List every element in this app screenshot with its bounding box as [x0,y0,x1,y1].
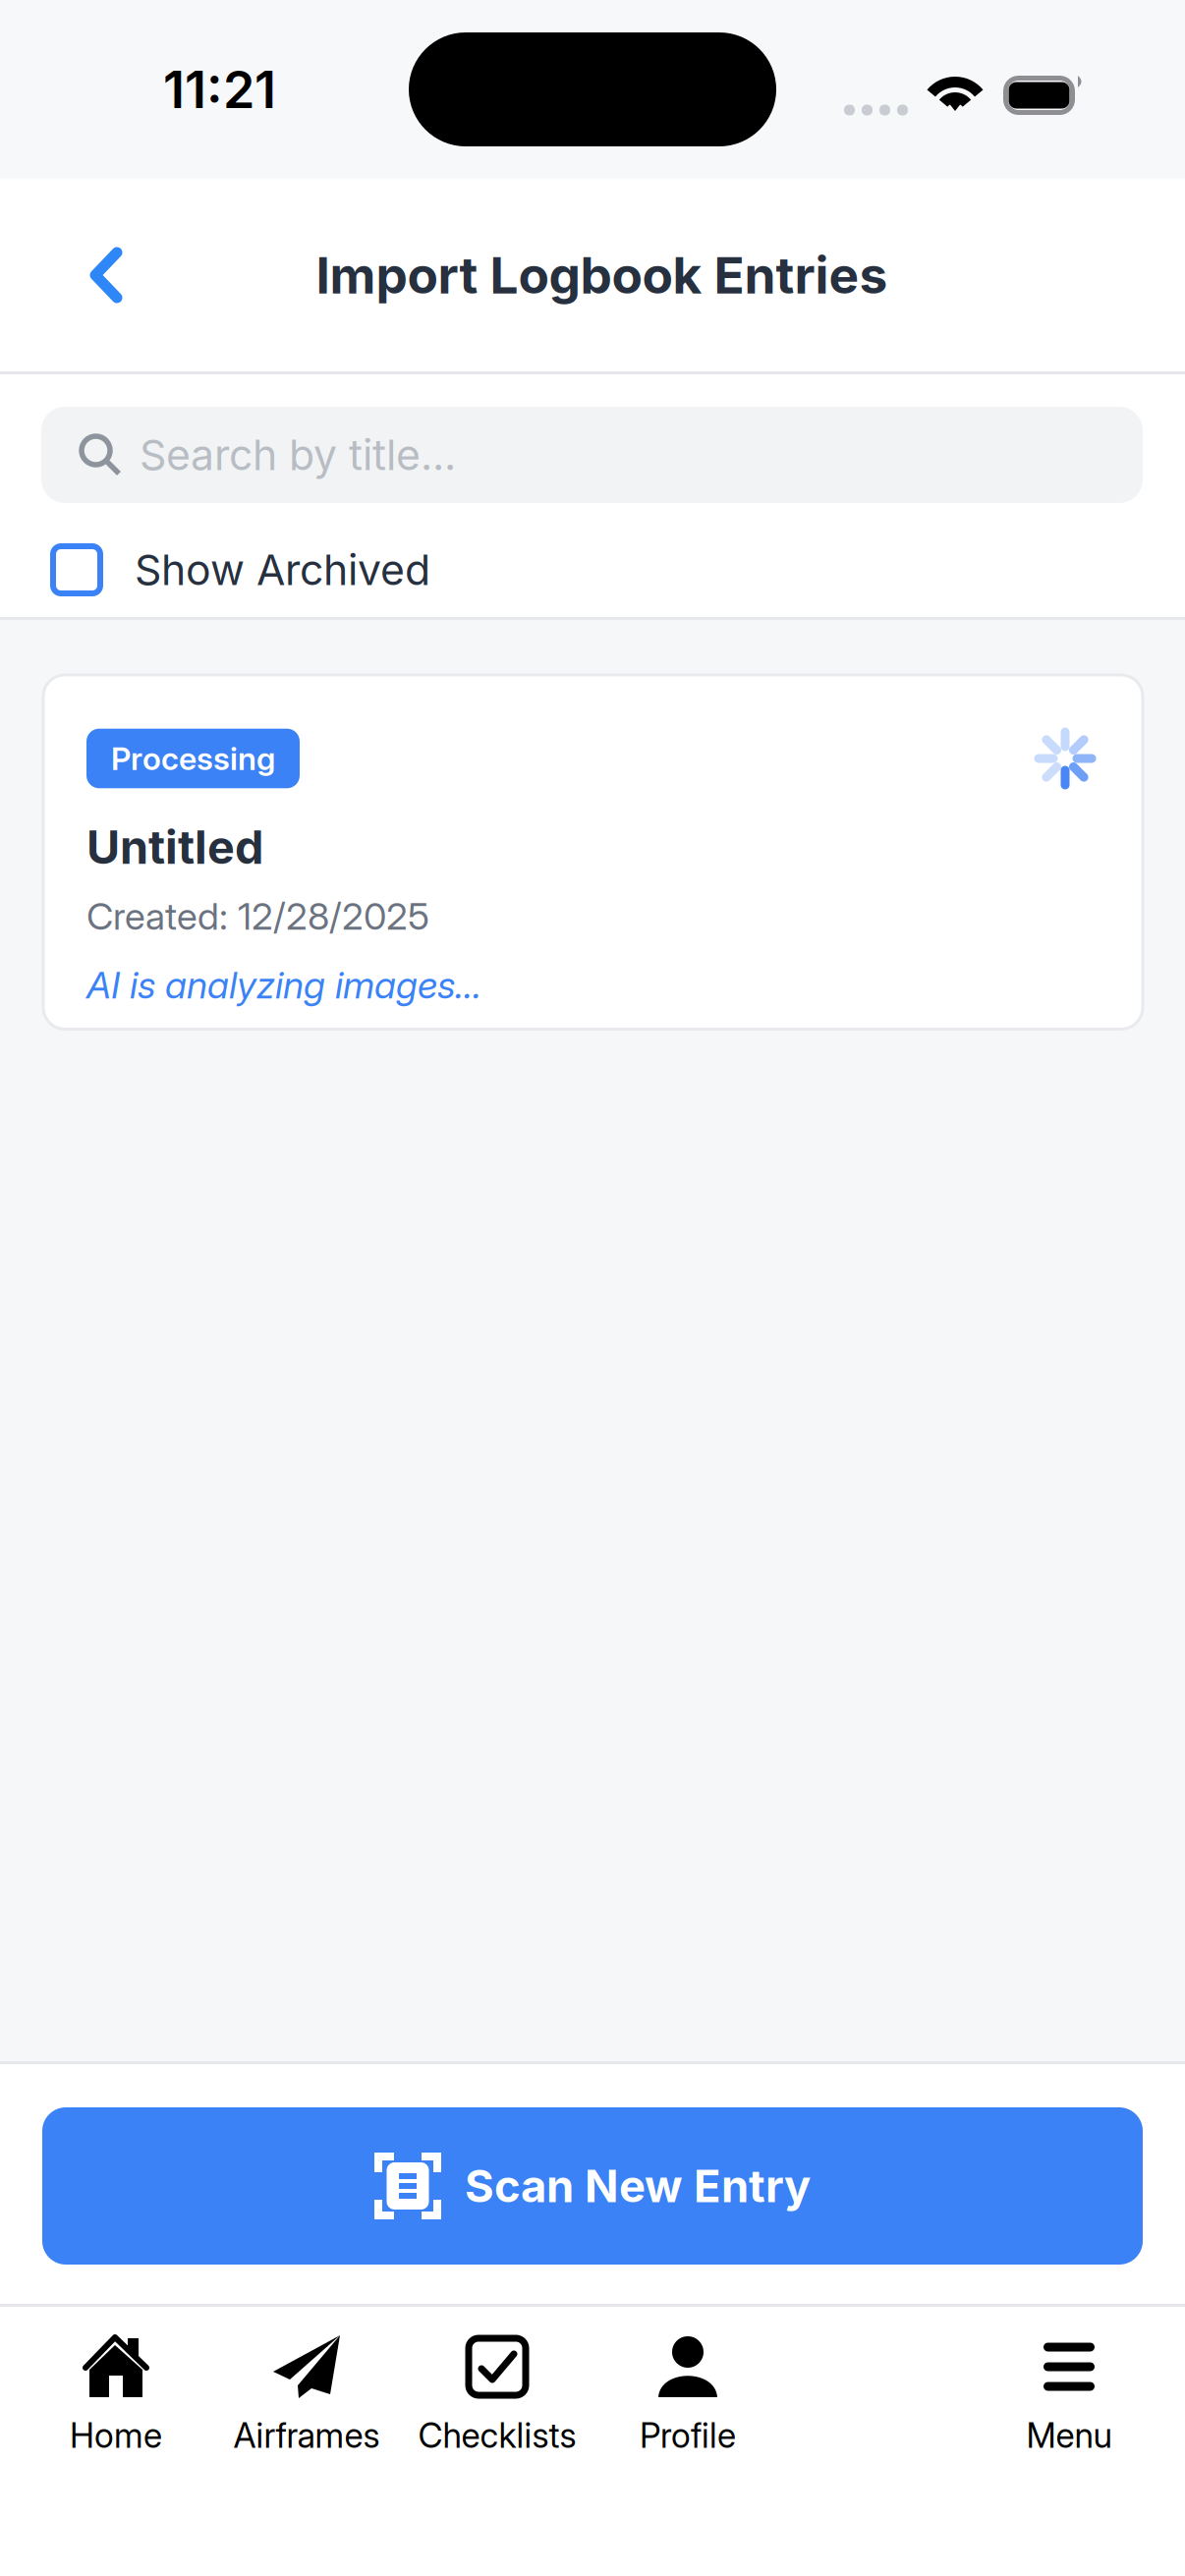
staticText: Home [70,2415,162,2456]
button[interactable]: Home [21,2334,211,2456]
staticText: AI is analyzing images... [86,962,481,1007]
button[interactable]: Processing [0,620,1185,1029]
staticText: 11:21 [163,58,276,120]
staticText: Import Logbook Entries [316,245,888,306]
staticText: Untitled [86,819,263,875]
button[interactable]: Menu [974,2334,1164,2456]
button[interactable]: Back [0,210,171,340]
staticText: Search by title... [140,430,456,480]
staticText: Profile [640,2415,736,2456]
button[interactable]: Profile [592,2334,783,2456]
button[interactable]: Scan New Entry [0,2107,1185,2265]
staticText: Show Archived [135,544,430,595]
staticText: Processing [111,739,275,777]
staticText: Airframes [233,2415,380,2456]
staticText: Scan New Entry [465,2159,811,2213]
button[interactable]: Airframes [211,2334,402,2456]
staticText: Menu [1026,2415,1112,2456]
staticText: Checklists [418,2415,576,2456]
staticText: Created: 12/28/2025 [86,894,429,939]
button[interactable]: Checklists [402,2334,592,2456]
button[interactable]: Show Archived [0,523,1185,617]
